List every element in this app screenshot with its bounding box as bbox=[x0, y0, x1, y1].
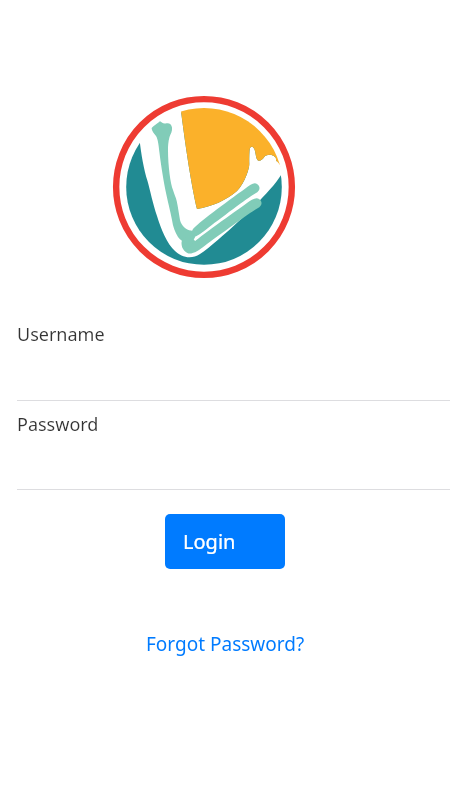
staticText: Login bbox=[183, 528, 236, 555]
button[interactable]: Forgot Password? bbox=[138, 627, 313, 661]
staticText: Username bbox=[17, 322, 105, 347]
button[interactable]: Login bbox=[165, 514, 285, 569]
staticText: Password bbox=[17, 412, 99, 437]
staticText: Forgot Password? bbox=[146, 631, 305, 657]
